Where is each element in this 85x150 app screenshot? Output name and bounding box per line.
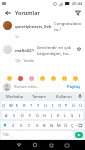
button[interactable]: Y [35, 101, 42, 109]
staticText: Tamam [32, 94, 46, 99]
staticText: Ü [79, 103, 82, 108]
button[interactable]: blush [28, 75, 35, 82]
staticText: Z [12, 123, 15, 128]
button[interactable]: fire [17, 75, 24, 82]
staticText: Merhaba [6, 94, 23, 99]
staticText: ?123 [3, 133, 9, 137]
button[interactable]: Symbols [1, 131, 10, 139]
staticText: C [28, 123, 31, 128]
button[interactable]: quietlyhearts_0x6 [0, 18, 85, 42]
button[interactable]: Z [9, 121, 17, 129]
button[interactable]: Send [75, 132, 83, 138]
staticText: N [50, 123, 54, 128]
button[interactable]: Ğ [70, 101, 77, 109]
button[interactable]: L [62, 111, 69, 119]
button[interactable]: W [7, 101, 14, 109]
staticText: Y [37, 103, 40, 108]
staticText: M [57, 123, 61, 128]
staticText: R [23, 103, 26, 108]
staticText: I [52, 103, 54, 108]
button[interactable]: H [41, 111, 48, 119]
button[interactable]: K [55, 111, 62, 119]
button[interactable]: Kullanıcı [51, 92, 76, 100]
staticText: T [30, 103, 33, 108]
button[interactable]: cry [50, 75, 57, 82]
staticText: Kullanıcı [56, 94, 72, 99]
staticText: Paylaş [67, 84, 81, 90]
button[interactable]: Back [3, 8, 12, 17]
button[interactable]: R [21, 101, 28, 109]
button[interactable]: Backspace [76, 121, 84, 129]
staticText: I [79, 113, 81, 118]
staticText: . [69, 133, 71, 138]
button[interactable]: hug [61, 75, 68, 82]
button[interactable]: Home [27, 140, 43, 150]
button[interactable]: J [48, 111, 55, 119]
button[interactable]: Voice input [76, 92, 83, 100]
button[interactable]: Share [73, 8, 82, 17]
button[interactable]: clap [72, 75, 79, 82]
button[interactable]: X [17, 121, 25, 129]
staticText: J [51, 113, 53, 118]
button[interactable]: Ş [69, 111, 76, 119]
staticText: quietlyhearts_0x6 [15, 24, 52, 30]
staticText: , [12, 133, 14, 138]
button[interactable]: Tamam [26, 92, 51, 100]
button[interactable]: Shift [1, 121, 9, 129]
staticText: Yorum ekle... [14, 84, 40, 90]
button[interactable]: Like [75, 45, 82, 52]
staticText: S [13, 113, 16, 118]
staticText: K [57, 113, 60, 118]
staticText: P [65, 103, 68, 108]
button[interactable]: F [26, 111, 34, 119]
staticText: V [36, 123, 39, 128]
button[interactable]: P [63, 101, 70, 109]
button[interactable]: Switch keyboard [59, 140, 75, 150]
button[interactable]: Merhaba [2, 92, 26, 100]
button[interactable]: , [10, 131, 16, 139]
button[interactable]: Back [11, 140, 27, 150]
button[interactable]: Q [1, 101, 7, 109]
button[interactable]: heart [6, 75, 13, 82]
button[interactable]: I [76, 111, 83, 119]
button[interactable]: I [49, 101, 56, 109]
staticText: 12s Yanıtla [15, 58, 34, 63]
button[interactable]: G [34, 111, 41, 119]
button[interactable]: Ü [77, 101, 84, 109]
staticText: E [16, 103, 19, 108]
staticText: B [43, 123, 46, 128]
staticText: X [20, 123, 23, 128]
button[interactable]: Recents [43, 140, 59, 150]
staticText: Congratulations ! [54, 21, 82, 33]
staticText: F [29, 113, 32, 118]
button[interactable]: smile [39, 75, 46, 82]
button[interactable]: O [56, 101, 63, 109]
button[interactable]: . [67, 131, 73, 139]
button[interactable]: E [14, 101, 21, 109]
staticText: Ç [71, 123, 74, 128]
button[interactable]: Ö [62, 121, 69, 129]
button[interactable]: T [28, 101, 35, 109]
button[interactable]: mafin021 [0, 42, 85, 66]
staticText: Ö [64, 123, 68, 128]
button[interactable]: M [55, 121, 62, 129]
staticText: G [36, 113, 39, 118]
button[interactable]: C [25, 121, 33, 129]
button[interactable]: Yorum ekle... [14, 84, 66, 90]
button[interactable]: N [48, 121, 55, 129]
button[interactable]: Paylaş [66, 84, 82, 90]
button[interactable]: S [10, 111, 18, 119]
staticText: O [58, 103, 62, 108]
button[interactable]: V [33, 121, 41, 129]
button[interactable]: U [42, 101, 49, 109]
staticText: U [44, 103, 47, 108]
button[interactable]: B [41, 121, 48, 129]
staticText: W [9, 103, 13, 108]
staticText: D [21, 113, 24, 118]
button[interactable]: A [2, 111, 10, 119]
staticText: 1s [15, 34, 19, 39]
staticText: Yorumlar [15, 9, 40, 16]
button[interactable]: Ç [69, 121, 76, 129]
button[interactable]: D [18, 111, 26, 119]
